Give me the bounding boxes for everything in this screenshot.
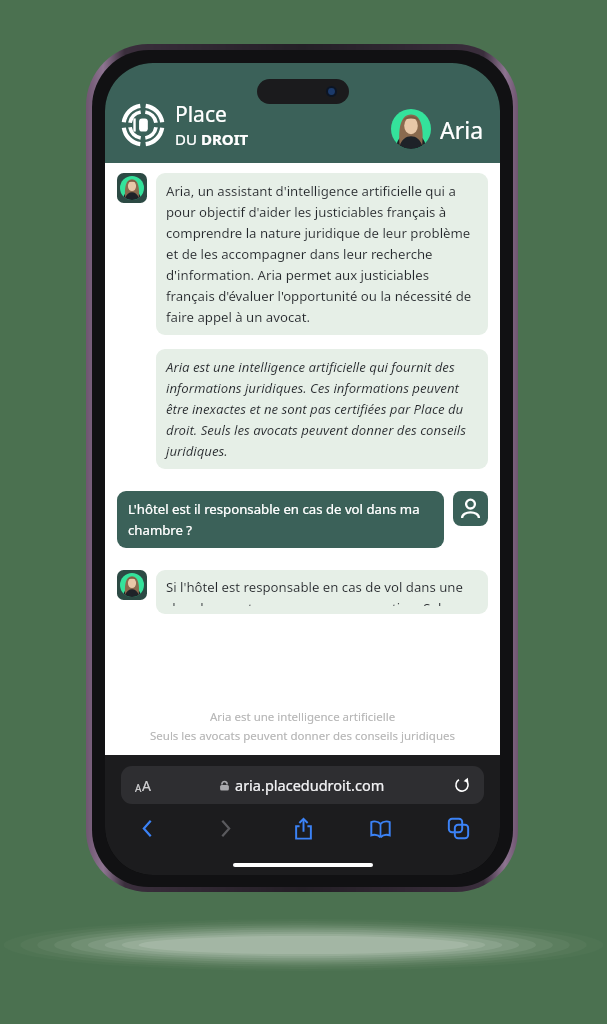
staticText: aria.placedudroit.com [235,775,385,795]
button[interactable]: Address bar [121,766,484,804]
button[interactable]: User [453,491,488,526]
button[interactable]: Aria profile [391,109,484,149]
staticText: A [142,776,151,795]
staticText: Aria est une intelligence artificielle [210,709,396,725]
staticText: Seuls les avocats peuvent donner des con… [150,728,455,744]
staticText: DROIT [201,129,249,149]
staticText: Aria est une intelligence artificielle q… [166,358,478,460]
staticText: L'hôtel est il responsable en cas de vol… [128,500,433,539]
staticText: A [135,781,142,795]
button[interactable]: Share [283,808,323,848]
staticText: Aria, un assistant d'intelligence artifi… [166,182,478,326]
button[interactable]: Forward [205,808,245,848]
button[interactable]: Aria, un assistant d'intelligence artifi… [156,173,488,335]
button[interactable]: Back [127,808,167,848]
button[interactable]: Aria est une intelligence artificielle q… [156,349,488,469]
button[interactable]: Si l'hôtel est responsable en cas de vol… [156,570,488,614]
staticText: Si l'hôtel est responsable en cas de vol… [166,578,478,606]
staticText: DU [175,129,201,149]
staticText: Place [175,100,227,129]
staticText: Aria [440,114,484,145]
button[interactable]: Bookmarks [360,808,400,848]
button[interactable]: L'hôtel est il responsable en cas de vol… [117,491,444,548]
other: Reload [454,777,470,793]
button[interactable]: Tabs [438,808,478,848]
